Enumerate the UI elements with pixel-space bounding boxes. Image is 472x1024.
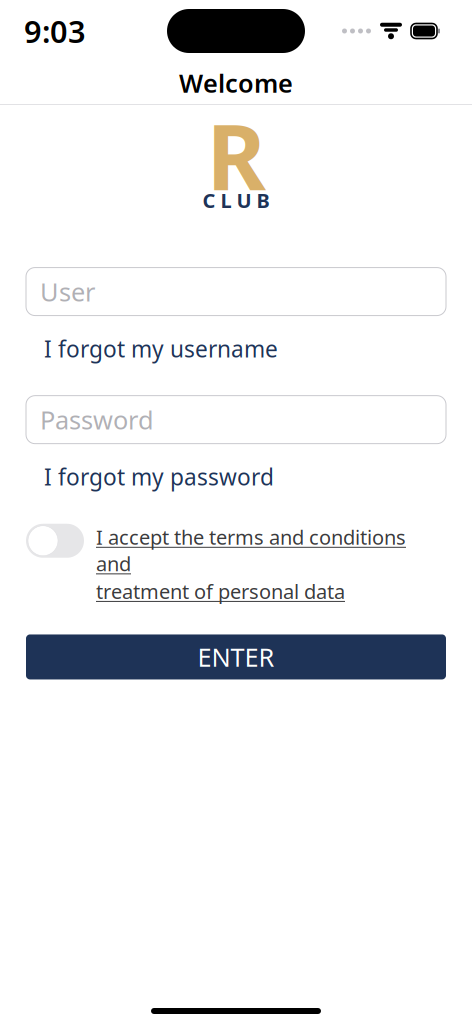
button[interactable]: I forgot my password [26, 460, 274, 494]
staticText: User [40, 275, 95, 308]
staticText: 9:03 [24, 11, 86, 51]
button[interactable]: ENTER [26, 634, 446, 679]
staticText: Password [40, 403, 154, 436]
staticText: I forgot my username [44, 334, 278, 364]
staticText: ENTER [197, 640, 274, 674]
staticText: Welcome [179, 66, 293, 100]
button[interactable]: I forgot my username [26, 332, 278, 366]
staticText: treatment of personal data [96, 578, 345, 604]
staticText: I accept the terms and conditions and [96, 524, 406, 577]
staticText: R [206, 95, 265, 215]
button[interactable]: I accept the terms and conditions and [96, 524, 406, 604]
staticText: C L U B [202, 187, 269, 214]
staticText: I forgot my password [44, 462, 274, 492]
button[interactable]: Accept terms and conditions [26, 524, 84, 558]
